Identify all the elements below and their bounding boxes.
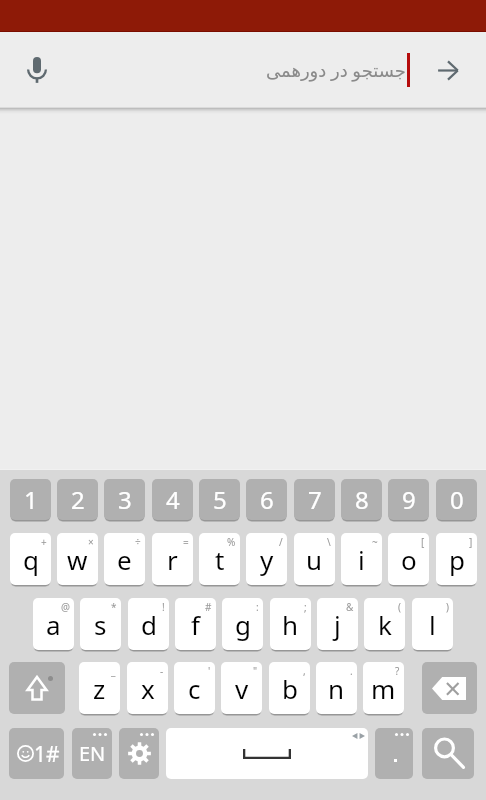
staticText: q: [23, 542, 39, 577]
staticText: ×: [88, 535, 94, 549]
button[interactable]: ": [221, 662, 262, 714]
staticText: y: [260, 542, 274, 577]
staticText: ,: [303, 664, 306, 678]
staticText: ': [208, 664, 211, 678]
button[interactable]: @: [33, 598, 74, 650]
staticText: \: [327, 535, 331, 549]
staticText: ): [446, 600, 449, 614]
staticText: ~: [372, 535, 378, 549]
staticText: m: [371, 671, 396, 706]
staticText: k: [378, 607, 392, 642]
staticText: f: [191, 607, 200, 642]
button[interactable]: ×: [57, 533, 98, 585]
button[interactable]: Space: [166, 728, 368, 779]
staticText: .: [350, 664, 353, 678]
staticText: جستجو در دورهمی: [266, 58, 406, 83]
button[interactable]: /: [246, 533, 287, 585]
button[interactable]: 3: [104, 479, 145, 520]
staticText: ": [253, 664, 258, 678]
staticText: v: [235, 671, 249, 706]
button[interactable]: %: [199, 533, 240, 585]
button[interactable]: 7: [294, 479, 335, 520]
button[interactable]: Backspace: [422, 662, 477, 714]
staticText: h: [282, 607, 299, 642]
staticText: 1: [24, 483, 38, 516]
staticText: 2: [71, 483, 85, 516]
button[interactable]: (: [364, 598, 405, 650]
staticText: #: [205, 600, 212, 614]
staticText: l: [429, 607, 436, 642]
staticText: 3: [118, 483, 132, 516]
button[interactable]: *: [80, 598, 121, 650]
staticText: 8: [355, 483, 369, 516]
button[interactable]: ): [412, 598, 453, 650]
button[interactable]: Search: [422, 728, 474, 779]
staticText: =: [183, 535, 189, 549]
button[interactable]: 6: [246, 479, 287, 520]
button[interactable]: !: [128, 598, 169, 650]
button[interactable]: .: [316, 662, 357, 714]
staticText: 6: [260, 483, 274, 516]
staticText: [: [421, 535, 425, 549]
staticText: s: [94, 607, 107, 642]
button[interactable]: ]: [436, 533, 477, 585]
button[interactable]: Search: [426, 48, 470, 92]
staticText: @: [61, 600, 70, 614]
staticText: u: [306, 542, 323, 577]
button[interactable]: 1: [10, 479, 51, 520]
button[interactable]: ~: [341, 533, 382, 585]
staticText: g: [235, 607, 251, 642]
button[interactable]: ': [174, 662, 215, 714]
button[interactable]: +: [10, 533, 51, 585]
button[interactable]: Shift: [9, 662, 65, 714]
staticText: ?: [395, 664, 400, 678]
staticText: *: [111, 600, 117, 614]
staticText: ;: [304, 600, 307, 614]
staticText: p: [449, 542, 465, 577]
staticText: 0: [450, 483, 464, 516]
button[interactable]: Settings: [119, 728, 159, 779]
staticText: x: [141, 671, 155, 706]
button[interactable]: Language: [72, 728, 112, 779]
button[interactable]: ,: [269, 662, 310, 714]
staticText: z: [93, 671, 106, 706]
staticText: d: [141, 607, 157, 642]
button[interactable]: 4: [152, 479, 193, 520]
button[interactable]: ;: [270, 598, 311, 650]
button[interactable]: Symbols and numbers: [9, 728, 64, 779]
button[interactable]: 2: [57, 479, 98, 520]
staticText: -: [160, 664, 164, 678]
button[interactable]: 9: [388, 479, 429, 520]
button[interactable]: _: [79, 662, 120, 714]
staticText: 9: [402, 483, 416, 516]
button[interactable]: 0: [436, 479, 477, 520]
staticText: +: [41, 535, 47, 549]
button[interactable]: -: [127, 662, 168, 714]
button[interactable]: Period: [375, 728, 413, 779]
button[interactable]: =: [152, 533, 193, 585]
button[interactable]: ?: [363, 662, 404, 714]
staticText: _: [111, 664, 116, 678]
staticText: j: [334, 607, 341, 642]
button[interactable]: ÷: [104, 533, 145, 585]
button[interactable]: :: [222, 598, 263, 650]
button[interactable]: [: [388, 533, 429, 585]
staticText: o: [401, 542, 417, 577]
staticText: :: [256, 600, 259, 614]
staticText: ]: [469, 535, 473, 549]
button[interactable]: Voice search: [15, 48, 59, 92]
staticText: /: [279, 535, 283, 549]
button[interactable]: 8: [341, 479, 382, 520]
button[interactable]: &: [317, 598, 358, 650]
button[interactable]: 5: [199, 479, 240, 520]
staticText: EN: [79, 740, 106, 767]
staticText: 7: [308, 483, 322, 516]
staticText: b: [282, 671, 298, 706]
staticText: c: [188, 671, 201, 706]
staticText: n: [328, 671, 345, 706]
button[interactable]: \: [294, 533, 335, 585]
staticText: 5: [213, 483, 227, 516]
staticText: a: [46, 607, 61, 642]
staticText: %: [227, 535, 236, 549]
button[interactable]: #: [175, 598, 216, 650]
